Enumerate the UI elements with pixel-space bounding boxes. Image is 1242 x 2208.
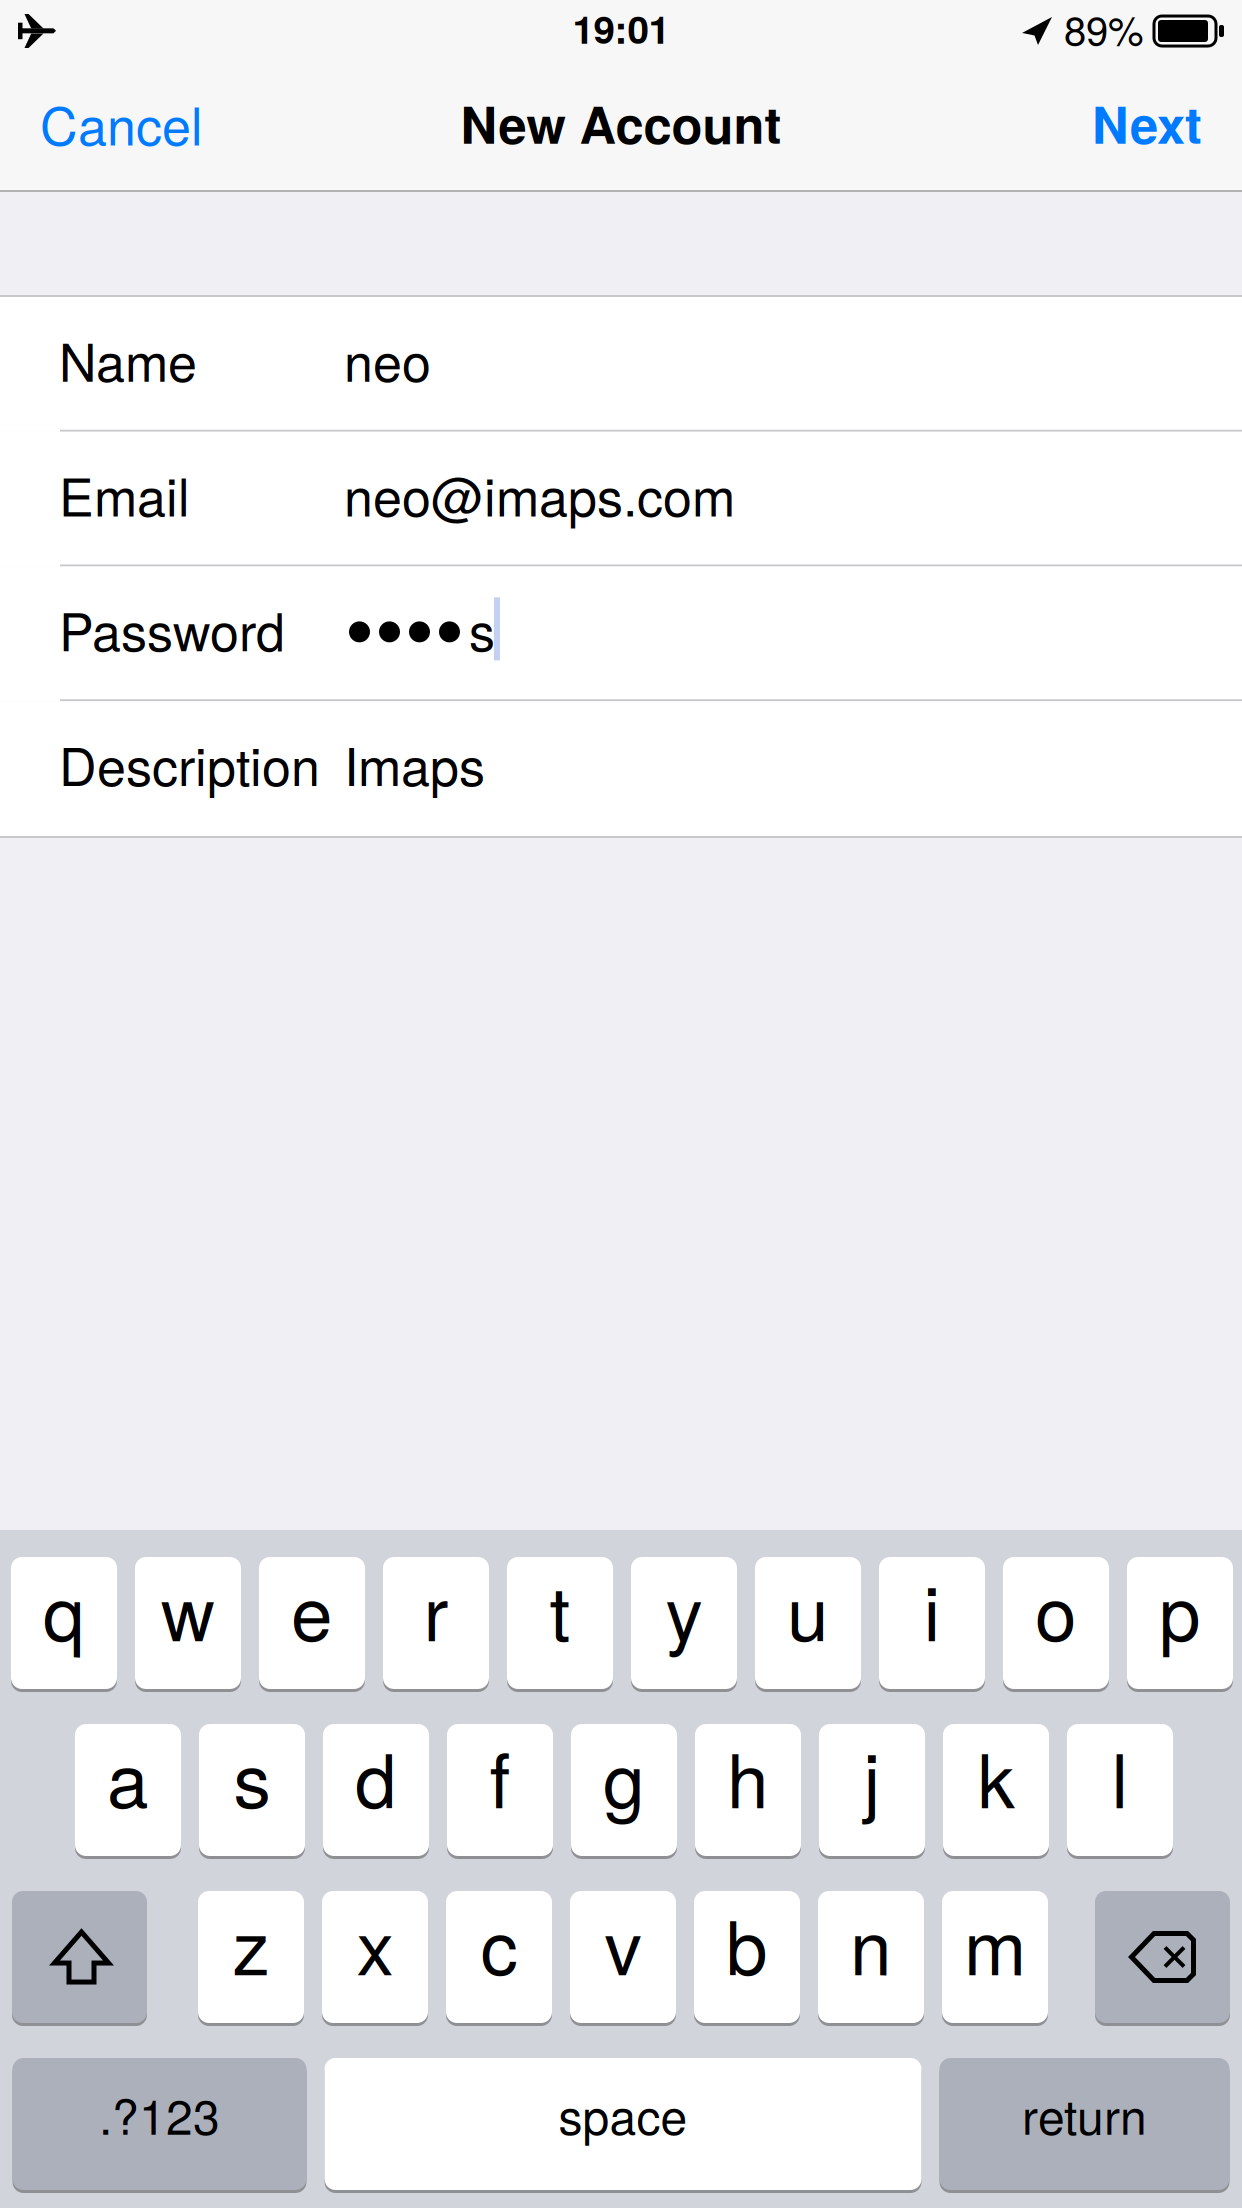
staticText: space <box>558 2080 687 2148</box>
staticText: t <box>549 1555 570 1662</box>
button[interactable]: u <box>755 1554 861 1692</box>
staticText: i <box>923 1555 940 1662</box>
staticText: Name <box>59 322 197 397</box>
staticText: n <box>850 1889 892 1996</box>
button[interactable]: c <box>446 1888 552 2026</box>
button[interactable]: k <box>943 1721 1049 1859</box>
staticText: New Account <box>460 87 781 159</box>
button[interactable]: Password <box>0 566 1242 701</box>
button[interactable]: p <box>1127 1554 1233 1692</box>
button[interactable]: b <box>694 1888 800 2026</box>
staticText: neo <box>344 322 431 397</box>
staticText: o <box>1035 1555 1077 1662</box>
staticText: Email <box>59 457 190 531</box>
button[interactable]: l <box>1067 1721 1173 1859</box>
button[interactable]: return <box>939 2055 1229 2193</box>
staticText: f <box>489 1722 510 1829</box>
staticText: h <box>727 1722 769 1829</box>
staticText: b <box>726 1889 768 1996</box>
staticText: s <box>233 1722 270 1829</box>
staticText: Password <box>59 592 285 666</box>
staticText: m <box>964 1889 1026 1996</box>
button[interactable]: x <box>322 1888 428 2026</box>
staticText: k <box>977 1722 1014 1829</box>
button[interactable]: z <box>198 1888 304 2026</box>
button[interactable]: Email <box>0 432 1242 567</box>
staticText: c <box>480 1889 517 1996</box>
button[interactable]: Description <box>0 701 1242 836</box>
staticText: q <box>43 1555 85 1662</box>
staticText: x <box>356 1889 393 1996</box>
staticText: j <box>863 1722 880 1829</box>
staticText: Cancel <box>40 86 203 160</box>
staticText: e <box>291 1555 333 1662</box>
button[interactable]: o <box>1003 1554 1109 1692</box>
staticText: p <box>1159 1555 1201 1662</box>
staticText: a <box>107 1722 149 1829</box>
staticText: g <box>603 1722 645 1829</box>
staticText: Description <box>59 726 320 801</box>
button[interactable]: i <box>879 1554 985 1692</box>
staticText: w <box>161 1555 215 1662</box>
button[interactable]: h <box>695 1721 801 1859</box>
staticText: 89% <box>1064 0 1144 57</box>
button[interactable]: v <box>570 1888 676 2026</box>
button[interactable]: m <box>942 1888 1048 2026</box>
button[interactable]: r <box>383 1554 489 1692</box>
button[interactable]: .?123 <box>12 2055 306 2193</box>
staticText: l <box>1111 1722 1128 1829</box>
button[interactable]: t <box>507 1554 613 1692</box>
button[interactable]: a <box>75 1721 181 1859</box>
button[interactable]: j <box>819 1721 925 1859</box>
button[interactable]: Cancel <box>0 62 229 192</box>
staticText: 19:01 <box>572 0 669 56</box>
staticText: return <box>1022 2080 1147 2148</box>
button[interactable]: e <box>259 1554 365 1692</box>
button[interactable]: y <box>631 1554 737 1692</box>
button[interactable]: g <box>571 1721 677 1859</box>
button[interactable]: f <box>447 1721 553 1859</box>
staticText: r <box>423 1555 448 1662</box>
staticText: neo@imaps.com <box>344 457 735 531</box>
staticText: v <box>604 1889 641 1996</box>
staticText: Next <box>1092 87 1202 159</box>
staticText: Imaps <box>344 726 485 801</box>
button[interactable]: w <box>135 1554 241 1692</box>
staticText: z <box>232 1889 269 1996</box>
button[interactable]: space <box>324 2055 921 2193</box>
button[interactable]: Name <box>0 297 1242 432</box>
button[interactable]: q <box>11 1554 117 1692</box>
staticText: u <box>787 1555 829 1662</box>
staticText: .?123 <box>99 2080 220 2148</box>
button[interactable]: n <box>818 1888 924 2026</box>
staticText: s <box>469 592 495 666</box>
button[interactable]: Shift <box>12 1888 147 2026</box>
button[interactable]: d <box>323 1721 429 1859</box>
button[interactable]: Delete <box>1095 1888 1230 2026</box>
staticText: y <box>665 1555 702 1662</box>
button[interactable]: Next <box>1066 62 1242 192</box>
staticText: d <box>355 1722 397 1829</box>
button[interactable]: s <box>199 1721 305 1859</box>
